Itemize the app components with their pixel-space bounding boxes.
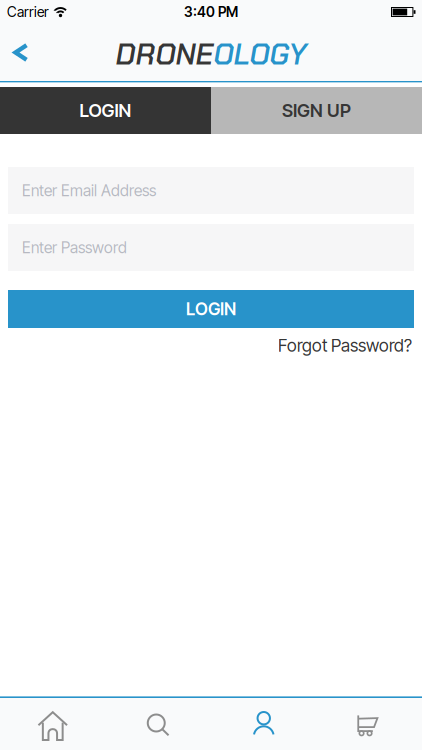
button[interactable]: LOGIN (0, 87, 211, 134)
staticText: Enter Password (22, 238, 127, 257)
staticText: OLOGY (213, 35, 306, 73)
button[interactable]: Enter Password (8, 224, 414, 271)
staticText: 3:40 PM (184, 3, 238, 20)
staticText: LOGIN (79, 100, 131, 121)
button[interactable]: LOGIN (8, 290, 414, 328)
staticText: Carrier (7, 3, 49, 20)
button[interactable]: Home (0, 698, 105, 750)
staticText: SIGN UP (282, 100, 351, 121)
button[interactable]: Forgot Password? (278, 335, 412, 356)
staticText: Forgot Password? (278, 335, 412, 356)
staticText: Enter Email Address (22, 181, 156, 200)
button[interactable]: Account (211, 698, 316, 750)
button[interactable]: Cart (316, 698, 422, 750)
button[interactable]: Back (0, 33, 29, 72)
staticText: DRONE (115, 35, 213, 73)
button[interactable]: Search (105, 698, 211, 750)
button[interactable]: Enter Email Address (8, 167, 414, 214)
staticText: LOGIN (186, 298, 236, 319)
button[interactable]: SIGN UP (211, 87, 422, 134)
